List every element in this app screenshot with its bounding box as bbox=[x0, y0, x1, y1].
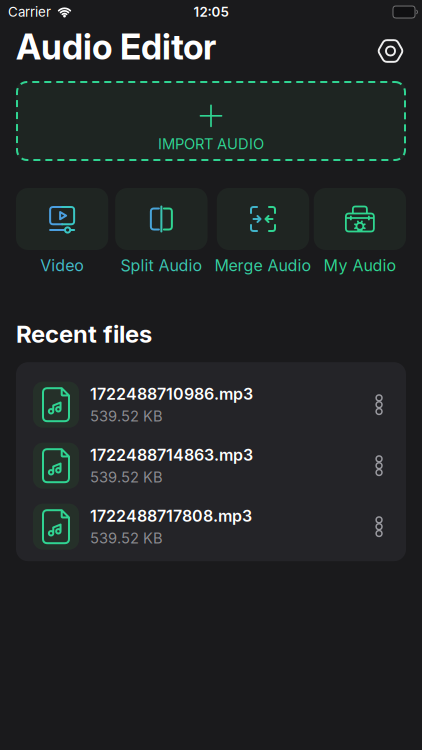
staticText: 539.52 KB bbox=[90, 529, 163, 547]
staticText: 539.52 KB bbox=[90, 468, 163, 486]
staticText: IMPORT AUDIO bbox=[158, 135, 264, 153]
staticText: Video bbox=[40, 256, 84, 275]
staticText: Audio Editor bbox=[16, 27, 216, 67]
staticText: 1722488710986.mp3 bbox=[90, 385, 253, 403]
staticText: Recent files bbox=[16, 320, 152, 348]
staticText: 539.52 KB bbox=[90, 407, 163, 425]
staticText: Merge Audio bbox=[214, 256, 311, 275]
staticText: My Audio bbox=[323, 256, 396, 275]
staticText: Split Audio bbox=[120, 256, 202, 275]
staticText: 1722488714863.mp3 bbox=[90, 446, 253, 464]
staticText: 1722488717808.mp3 bbox=[90, 507, 252, 525]
staticText: 12:05 bbox=[193, 4, 228, 20]
staticText: Carrier bbox=[8, 4, 51, 20]
